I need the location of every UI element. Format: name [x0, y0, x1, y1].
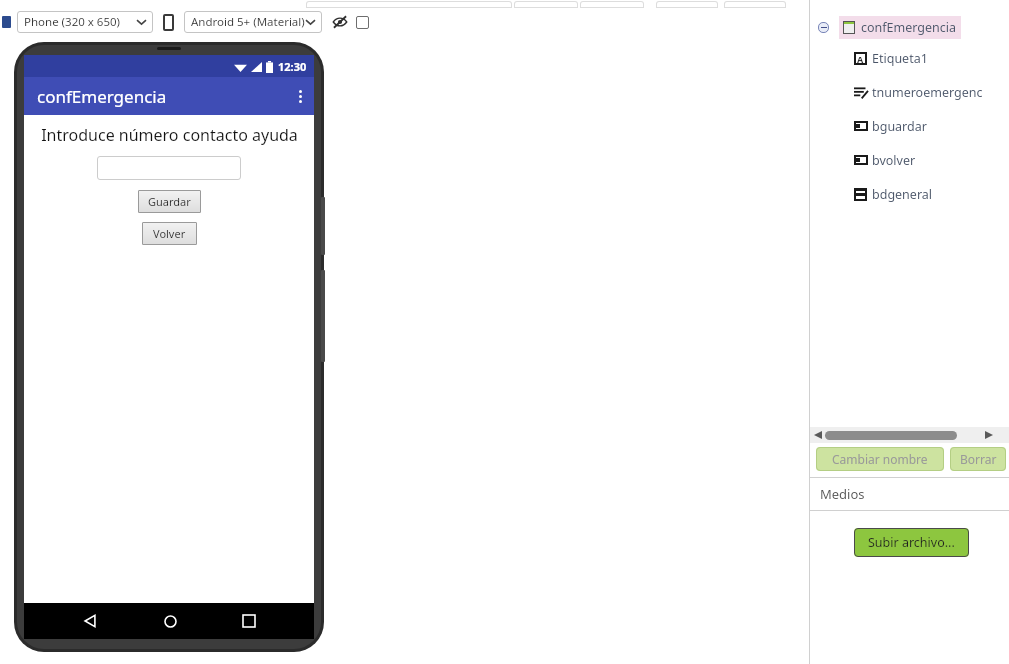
button[interactable]: Subir archivo... — [854, 528, 969, 557]
staticText: tnumeroemergenc — [872, 84, 983, 101]
staticText: 12:30 — [278, 59, 307, 74]
button[interactable] — [810, 75, 1009, 109]
staticText: Volver — [153, 226, 186, 241]
button[interactable]: Cambiar nombre — [816, 447, 944, 471]
staticText: confEmergencia — [861, 19, 957, 36]
button[interactable]: Volver — [142, 222, 197, 245]
button[interactable] — [97, 156, 241, 180]
other: Scroll right — [985, 431, 993, 439]
staticText: bdgeneral — [872, 186, 933, 203]
staticText: Etiqueta1 — [872, 50, 928, 67]
staticText: bguardar — [872, 118, 927, 135]
button[interactable] — [810, 143, 1009, 177]
staticText: Medios — [820, 485, 865, 503]
staticText: A — [857, 53, 864, 65]
staticText: Introduce número contacto ayuda — [41, 124, 298, 146]
staticText: Android 5+ (Material) — [191, 14, 305, 30]
button[interactable]: Collapse — [818, 22, 829, 33]
button[interactable]: confEmergencia — [843, 19, 957, 36]
button[interactable]: Toggle visibility — [332, 14, 348, 30]
button[interactable]: Back — [75, 606, 105, 636]
button[interactable]: Borrar — [950, 447, 1006, 471]
button[interactable]: More options — [295, 86, 306, 107]
staticText: Subir archivo... — [868, 534, 955, 551]
button[interactable]: Home — [156, 607, 185, 636]
other: Scroll left — [814, 431, 822, 439]
button[interactable] — [356, 16, 369, 29]
staticText: Phone (320 x 650) — [24, 14, 121, 30]
staticText: Borrar — [960, 451, 997, 467]
staticText: bvolver — [872, 152, 916, 169]
button[interactable]: Phone (320 x 650) — [17, 11, 153, 33]
button[interactable] — [810, 109, 1009, 143]
button[interactable] — [810, 177, 1009, 211]
button[interactable]: Recents — [235, 607, 263, 635]
staticText: Guardar — [148, 194, 191, 209]
button[interactable]: Guardar — [138, 190, 201, 213]
button[interactable]: A — [810, 41, 1009, 75]
staticText: Cambiar nombre — [832, 451, 928, 467]
staticText: confEmergencia — [37, 85, 167, 108]
button[interactable]: Android 5+ (Material) — [184, 11, 322, 33]
